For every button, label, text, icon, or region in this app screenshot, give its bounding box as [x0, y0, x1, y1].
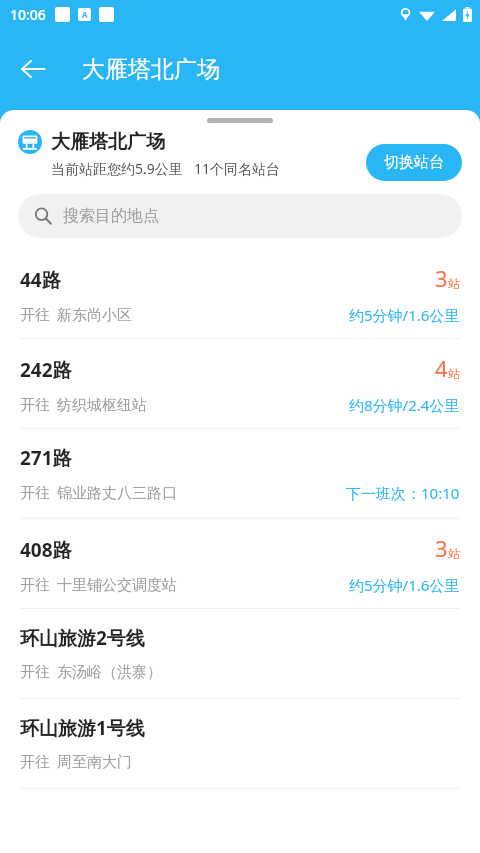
staticText: 408路: [20, 537, 72, 563]
staticText: 开往: [20, 484, 50, 503]
button[interactable]: 搜索目的地点: [18, 194, 462, 238]
button[interactable]: 44路: [0, 249, 480, 338]
staticText: 10:06: [10, 5, 46, 24]
staticText: 开往: [20, 396, 50, 415]
button[interactable]: 环山旅游1号线: [0, 699, 480, 788]
button[interactable]: 271路: [0, 429, 480, 518]
staticText: 11个同名站台: [194, 159, 281, 178]
staticText: 大雁塔北广场: [51, 130, 165, 154]
button[interactable]: Back: [6, 42, 60, 96]
staticText: 4: [435, 353, 448, 383]
staticText: 约5分钟/1.6公里: [349, 305, 460, 325]
staticText: 3: [435, 533, 448, 563]
staticText: 十里铺公交调度站: [57, 576, 177, 595]
staticText: 开往: [20, 576, 50, 595]
staticText: 站: [448, 276, 460, 291]
staticText: 站: [448, 546, 460, 561]
staticText: 当前站距您约5.9公里: [51, 159, 183, 178]
staticText: 环山旅游2号线: [20, 625, 145, 651]
staticText: 纺织城枢纽站: [57, 396, 147, 415]
staticText: 44路: [20, 267, 61, 293]
staticText: 下一班次：10:10: [346, 483, 460, 503]
staticText: 开往: [20, 753, 50, 772]
staticText: A: [82, 9, 88, 20]
staticText: 切换站台: [384, 153, 444, 172]
button[interactable]: 242路: [0, 339, 480, 428]
staticText: 锦业路丈八三路口: [57, 484, 177, 503]
staticText: 大雁塔北广场: [82, 55, 220, 84]
staticText: 搜索目的地点: [63, 206, 159, 226]
button[interactable]: 切换站台: [366, 144, 462, 181]
staticText: 东汤峪（洪寨）: [57, 663, 162, 682]
staticText: 242路: [20, 357, 72, 383]
button[interactable]: 环山旅游2号线: [0, 609, 480, 698]
staticText: 站: [448, 366, 460, 381]
staticText: 约8分钟/2.4公里: [349, 395, 460, 415]
staticText: 约5分钟/1.6公里: [349, 575, 460, 595]
staticText: 3: [435, 263, 448, 293]
staticText: 271路: [20, 445, 72, 471]
button[interactable]: 408路: [0, 519, 480, 608]
staticText: 开往: [20, 663, 50, 682]
staticText: 周至南大门: [57, 753, 132, 772]
staticText: 新东尚小区: [57, 306, 132, 325]
staticText: 环山旅游1号线: [20, 715, 145, 741]
staticText: 开往: [20, 306, 50, 325]
